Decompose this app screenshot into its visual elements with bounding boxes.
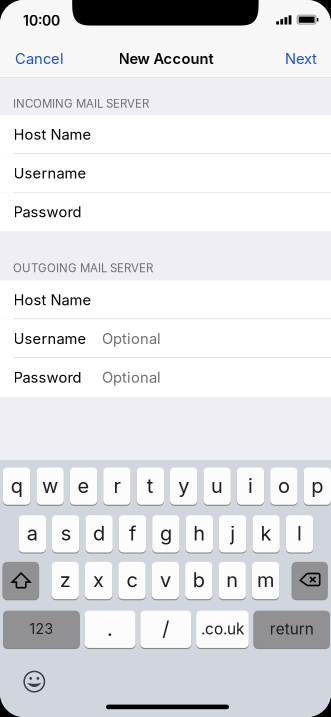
button[interactable]: f: [119, 515, 146, 553]
button[interactable]: b: [185, 561, 212, 600]
staticText: o: [278, 473, 290, 498]
staticText: p: [311, 473, 323, 498]
button[interactable]: n: [218, 561, 246, 600]
button[interactable]: u: [203, 467, 231, 505]
staticText: Optional: [102, 368, 161, 386]
staticText: .co.uk: [201, 619, 244, 638]
button[interactable]: y: [170, 467, 197, 505]
button[interactable]: Delete: [292, 561, 328, 600]
staticText: 10:00: [23, 12, 60, 29]
staticText: New Account: [118, 50, 213, 67]
button[interactable]: k: [252, 515, 280, 553]
staticText: Username: [13, 164, 86, 182]
staticText: Password: [13, 368, 81, 386]
button[interactable]: Username: [0, 154, 331, 193]
staticText: r: [113, 473, 120, 498]
staticText: n: [226, 568, 238, 592]
staticText: x: [93, 568, 104, 592]
button[interactable]: Username: [0, 319, 331, 358]
button[interactable]: a: [19, 515, 46, 553]
staticText: Host Name: [13, 125, 91, 143]
button[interactable]: p: [304, 467, 331, 505]
button[interactable]: x: [85, 561, 112, 600]
button[interactable]: e: [70, 467, 97, 505]
button[interactable]: s: [52, 515, 79, 553]
staticText: Next: [285, 50, 317, 67]
staticText: g: [160, 521, 172, 545]
button[interactable]: Next: [272, 41, 330, 77]
button[interactable]: g: [152, 515, 180, 553]
staticText: b: [193, 568, 205, 592]
staticText: c: [126, 568, 137, 592]
staticText: u: [211, 473, 223, 498]
staticText: d: [93, 521, 105, 545]
staticText: l: [297, 521, 302, 545]
button[interactable]: Shift: [3, 561, 39, 600]
button[interactable]: .: [84, 610, 136, 648]
staticText: i: [248, 473, 253, 498]
button[interactable]: c: [118, 561, 146, 600]
button[interactable]: m: [252, 561, 279, 600]
staticText: return: [270, 619, 314, 638]
button[interactable]: q: [3, 467, 30, 505]
button[interactable]: w: [36, 467, 64, 505]
staticText: 123: [29, 620, 53, 637]
staticText: Password: [13, 203, 81, 221]
button[interactable]: 123: [3, 610, 80, 648]
staticText: Optional: [102, 330, 161, 347]
staticText: e: [77, 473, 89, 498]
button[interactable]: Password: [0, 193, 331, 231]
button[interactable]: i: [237, 467, 264, 505]
staticText: h: [193, 521, 205, 545]
button[interactable]: Password: [0, 358, 331, 397]
button[interactable]: Emoji keyboard: [19, 667, 49, 697]
button[interactable]: Cancel: [8, 41, 70, 77]
staticText: k: [261, 521, 272, 545]
staticText: f: [129, 521, 136, 545]
staticText: q: [11, 473, 23, 498]
staticText: INCOMING MAIL SERVER: [13, 97, 149, 110]
button[interactable]: /: [140, 610, 191, 648]
button[interactable]: z: [51, 561, 79, 600]
staticText: OUTGOING MAIL SERVER: [13, 261, 153, 275]
staticText: m: [257, 568, 274, 592]
staticText: y: [178, 473, 189, 498]
button[interactable]: h: [186, 515, 213, 553]
button[interactable]: return: [253, 610, 330, 648]
staticText: z: [60, 568, 71, 592]
staticText: j: [230, 521, 235, 545]
button[interactable]: Host Name: [0, 115, 331, 154]
staticText: w: [42, 473, 58, 498]
staticText: t: [147, 473, 154, 498]
staticText: s: [61, 521, 71, 545]
button[interactable]: l: [286, 515, 313, 553]
staticText: /: [162, 617, 169, 641]
staticText: v: [160, 568, 171, 592]
staticText: Host Name: [13, 291, 91, 309]
button[interactable]: r: [103, 467, 131, 505]
button[interactable]: o: [270, 467, 298, 505]
staticText: a: [27, 521, 38, 545]
button[interactable]: t: [137, 467, 164, 505]
button[interactable]: d: [85, 515, 113, 553]
button[interactable]: .co.uk: [196, 610, 249, 648]
staticText: Username: [13, 330, 86, 347]
button[interactable]: j: [219, 515, 246, 553]
staticText: Cancel: [15, 50, 64, 67]
button[interactable]: v: [152, 561, 179, 600]
button[interactable]: Host Name: [0, 280, 331, 319]
staticText: .: [107, 617, 113, 641]
